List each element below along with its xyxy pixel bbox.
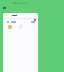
- button[interactable]: Menu: [3, 7, 6, 9]
- button[interactable]: Material Design: [13, 1, 27, 4]
- staticText: Material Design: [13, 1, 27, 4]
